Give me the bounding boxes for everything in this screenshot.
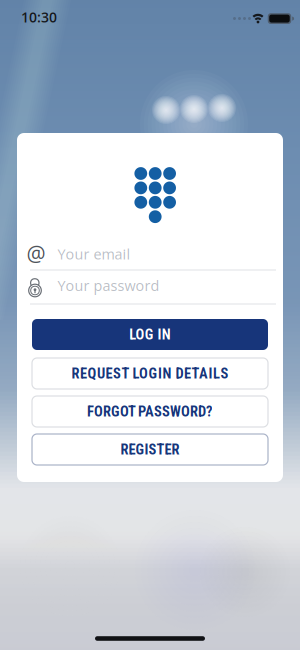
staticText: 10:30 <box>21 7 57 27</box>
staticText: Your email <box>57 244 130 264</box>
staticText: @ <box>26 239 45 268</box>
staticText: REQUEST LOGIN DETAILS <box>71 365 228 382</box>
staticText: Your password <box>57 276 159 295</box>
staticText: LOG IN <box>129 326 171 343</box>
staticText: FORGOT PASSWORD? <box>87 403 213 420</box>
staticText: REGISTER <box>120 441 179 458</box>
